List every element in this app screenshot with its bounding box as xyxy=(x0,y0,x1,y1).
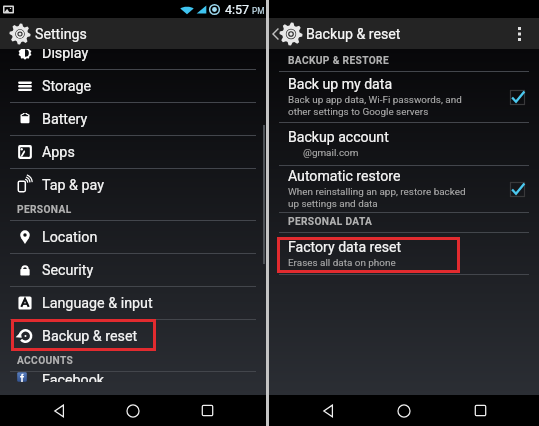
button[interactable]: Home xyxy=(380,395,428,426)
staticText: Back up app data, Wi-Fi passwords, and o… xyxy=(288,94,462,118)
button[interactable]: Storage xyxy=(0,70,266,102)
staticText: ACCOUNTS xyxy=(17,355,74,367)
staticText: Battery xyxy=(42,111,88,128)
button[interactable]: Backup & reset xyxy=(269,18,539,49)
button[interactable]: Display xyxy=(0,49,266,69)
button[interactable]: Location xyxy=(0,221,266,253)
staticText: Language & input xyxy=(42,295,153,312)
staticText: Backup account xyxy=(288,129,389,146)
button[interactable]: Facebook xyxy=(0,372,266,382)
button[interactable]: Tap & pay xyxy=(0,169,266,201)
staticText: PM xyxy=(252,6,265,16)
button[interactable]: Recent apps xyxy=(456,395,504,426)
staticText: Backup & reset xyxy=(306,26,401,43)
button[interactable]: Automatic restore xyxy=(495,166,539,212)
staticText: Automatic restore xyxy=(288,168,401,185)
staticText: Facebook xyxy=(42,372,105,382)
staticText: Security xyxy=(42,262,94,279)
button[interactable]: Back xyxy=(304,395,352,426)
staticText: Display xyxy=(42,49,89,62)
button[interactable]: Recent apps xyxy=(183,395,231,426)
button[interactable]: Language & input xyxy=(0,287,266,319)
button[interactable]: Backup & reset xyxy=(0,320,266,352)
staticText: Location xyxy=(42,229,98,246)
button[interactable]: Factory data reset xyxy=(269,233,539,274)
button[interactable]: Back up my data xyxy=(495,72,539,122)
staticText: Erases all data on phone xyxy=(288,257,396,269)
button[interactable]: Backup account xyxy=(269,123,539,165)
staticText: PERSONAL xyxy=(17,204,72,216)
button[interactable]: Apps xyxy=(0,136,266,168)
staticText: BACKUP & RESTORE xyxy=(288,55,390,67)
staticText: Settings xyxy=(35,26,87,43)
button[interactable]: Security xyxy=(0,254,266,286)
staticText: @gmail.com xyxy=(303,147,359,159)
staticText: Apps xyxy=(42,144,75,161)
button[interactable]: Back xyxy=(35,395,83,426)
button[interactable]: Home xyxy=(109,395,157,426)
button[interactable]: Automatic restore xyxy=(269,166,539,212)
button[interactable]: Battery xyxy=(0,103,266,135)
button[interactable]: Back up my data xyxy=(269,72,539,122)
staticText: PERSONAL DATA xyxy=(288,216,373,228)
staticText: Back up my data xyxy=(288,76,393,93)
staticText: Factory data reset xyxy=(288,239,402,256)
staticText: Storage xyxy=(42,78,92,95)
button[interactable]: More options xyxy=(500,18,539,49)
staticText: Tap & pay xyxy=(42,177,104,194)
staticText: When reinstalling an app, restore backed… xyxy=(288,186,466,210)
staticText: Backup & reset xyxy=(42,328,138,345)
button[interactable]: Settings xyxy=(0,18,266,49)
staticText: 4:57 xyxy=(225,2,250,17)
